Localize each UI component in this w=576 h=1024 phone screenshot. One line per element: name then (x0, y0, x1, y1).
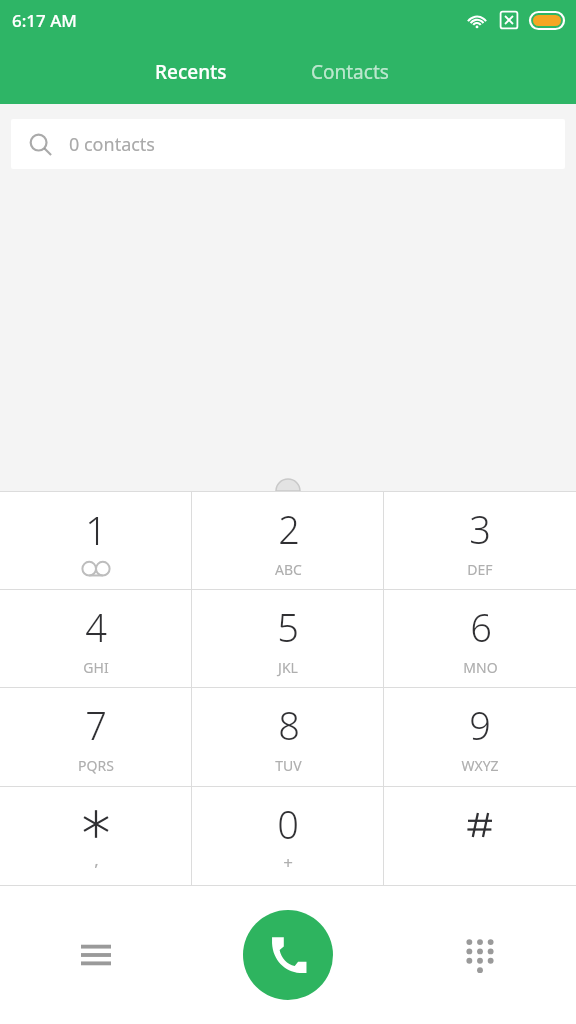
button[interactable]: 6 (384, 590, 576, 687)
staticText: DEF (467, 560, 493, 579)
button[interactable]: Call (243, 910, 333, 1000)
button[interactable]: Contacts (293, 49, 407, 95)
button[interactable]: Menu (0, 886, 192, 1024)
button[interactable]: 3 (384, 492, 576, 589)
staticText: ABC (275, 560, 302, 579)
staticText: 6 (470, 601, 492, 653)
button[interactable]: Dialpad (384, 886, 576, 1024)
button[interactable]: 0 (192, 787, 384, 885)
button[interactable]: 5 (192, 590, 384, 687)
staticText: , (94, 848, 99, 871)
staticText: + (283, 851, 293, 874)
button[interactable] (384, 787, 576, 885)
staticText: PQRS (78, 756, 114, 775)
button[interactable]: 8 (192, 688, 384, 786)
staticText: Recents (155, 59, 227, 85)
staticText: 5 (277, 601, 299, 653)
staticText: 1 (85, 504, 107, 556)
button[interactable]: 1 (0, 492, 192, 589)
staticText: 0 contacts (69, 132, 155, 157)
button[interactable]: , (0, 787, 192, 885)
staticText: 9 (469, 699, 491, 751)
staticText: 3 (469, 503, 491, 555)
button[interactable]: 9 (384, 688, 576, 786)
button[interactable]: 7 (0, 688, 192, 786)
staticText: 0 (277, 798, 299, 850)
button[interactable]: 2 (192, 492, 384, 589)
button[interactable]: 4 (0, 590, 192, 687)
staticText: MNO (463, 658, 498, 677)
staticText: WXYZ (461, 756, 499, 775)
staticText: 4 (85, 601, 107, 653)
staticText: GHI (83, 658, 109, 677)
staticText: 7 (85, 699, 107, 751)
staticText: JKL (278, 658, 298, 677)
staticText: TUV (275, 756, 302, 775)
staticText: Contacts (311, 59, 389, 85)
button[interactable]: Recents (137, 49, 245, 95)
staticText: 8 (278, 699, 300, 751)
button[interactable]: 0 contacts (11, 119, 565, 169)
staticText: 6:17 AM (12, 9, 77, 32)
staticText: 2 (278, 503, 300, 555)
